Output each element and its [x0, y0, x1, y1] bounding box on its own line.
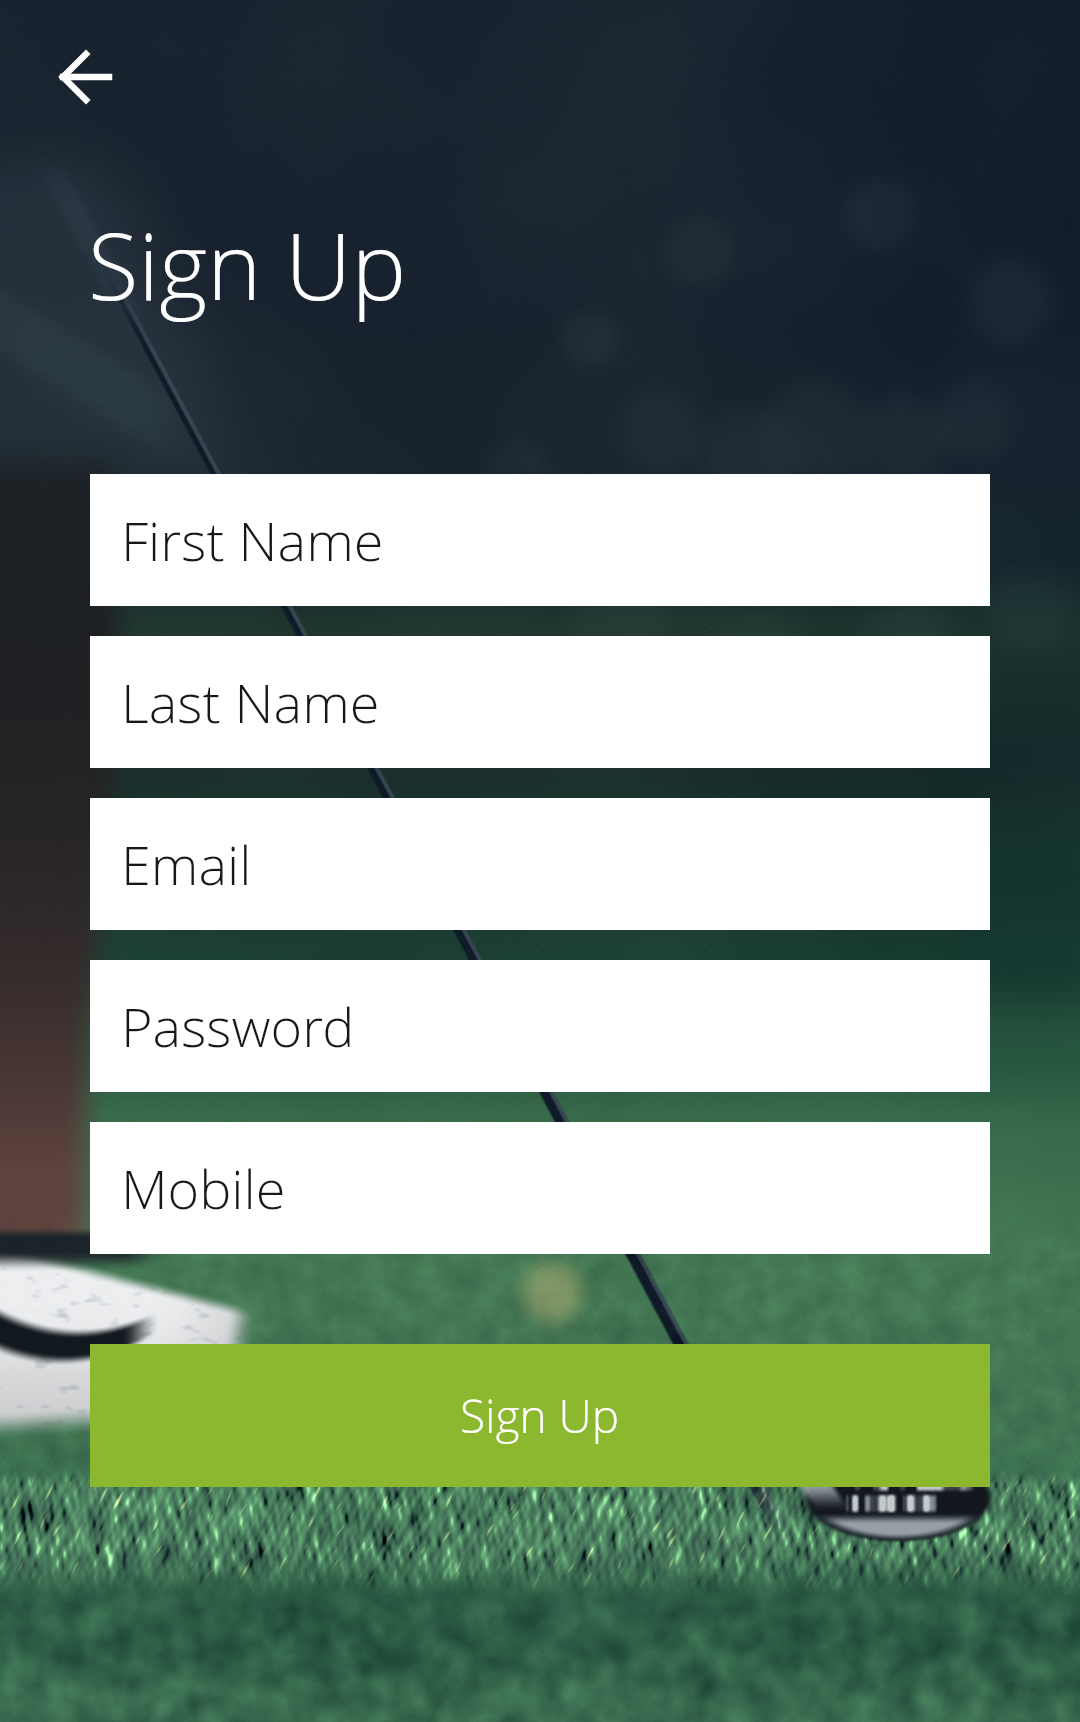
staticText: Last Name: [121, 665, 380, 739]
button[interactable]: Email: [90, 798, 990, 930]
staticText: Password: [121, 989, 355, 1063]
staticText: First Name: [121, 503, 384, 577]
staticText: Sign Up: [88, 202, 407, 327]
button[interactable]: Back: [44, 36, 128, 120]
button[interactable]: Sign Up: [90, 1344, 990, 1487]
staticText: Mobile: [121, 1151, 286, 1225]
button[interactable]: Mobile: [90, 1122, 990, 1254]
button[interactable]: Last Name: [90, 636, 990, 768]
button[interactable]: First Name: [90, 474, 990, 606]
staticText: Email: [121, 827, 252, 901]
button[interactable]: Password: [90, 960, 990, 1092]
staticText: Sign Up: [460, 1384, 620, 1447]
